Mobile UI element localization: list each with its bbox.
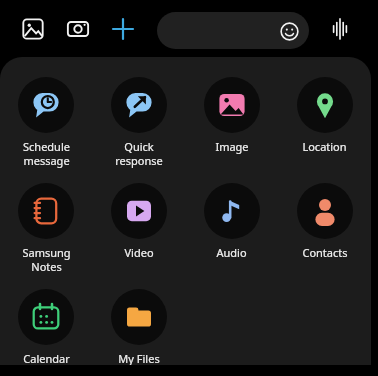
- staticText: Location: [302, 139, 347, 154]
- button[interactable]: Add attachment: [108, 14, 138, 44]
- button[interactable]: Audio: [185, 183, 278, 289]
- staticText: Audio: [216, 245, 247, 260]
- button[interactable]: Video: [92, 183, 185, 289]
- staticText: Schedule message: [23, 139, 70, 168]
- staticText: My Files: [118, 351, 160, 365]
- staticText: Calendar: [23, 351, 70, 365]
- button[interactable]: Samsung Notes: [0, 183, 92, 289]
- button[interactable]: Schedule message: [0, 77, 92, 183]
- button[interactable]: Contacts: [278, 183, 371, 289]
- staticText: Quick response: [115, 139, 163, 168]
- button[interactable]: My Files: [92, 289, 185, 365]
- button[interactable]: Location: [278, 77, 371, 183]
- button[interactable]: Image: [185, 77, 278, 183]
- button[interactable]: Quick response: [92, 77, 185, 183]
- button[interactable]: Voice message: [325, 14, 355, 44]
- button[interactable]: Calendar: [0, 289, 92, 365]
- staticText: Samsung Notes: [22, 245, 71, 274]
- button[interactable]: Camera: [63, 14, 93, 44]
- staticText: Image: [215, 139, 249, 154]
- staticText: Video: [124, 245, 154, 260]
- button[interactable]: Gallery: [18, 14, 48, 44]
- button[interactable]: Emoji: [157, 12, 309, 49]
- button[interactable]: Emoji: [277, 19, 301, 43]
- staticText: Contacts: [302, 245, 348, 260]
